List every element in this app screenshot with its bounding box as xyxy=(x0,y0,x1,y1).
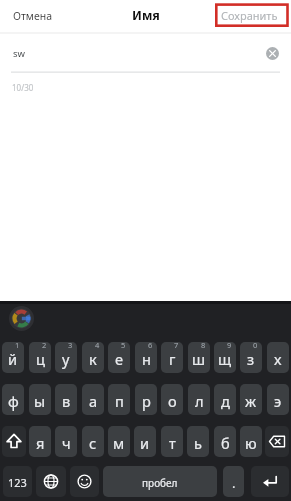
button[interactable]: б xyxy=(214,426,236,457)
button[interactable]: к xyxy=(82,342,104,373)
button[interactable]: я xyxy=(29,426,51,457)
staticText: ш xyxy=(192,349,206,369)
staticText: 123 xyxy=(8,475,27,490)
staticText: х xyxy=(274,349,282,369)
button[interactable]: Ввод xyxy=(251,466,289,497)
staticText: 7 xyxy=(174,342,179,350)
staticText: ь xyxy=(194,433,202,453)
staticText: л xyxy=(195,391,204,411)
staticText: 2 xyxy=(42,342,47,350)
staticText: г xyxy=(169,349,176,369)
staticText: ф xyxy=(8,391,19,411)
button[interactable]: Эмодзи xyxy=(70,466,99,497)
button[interactable]: р xyxy=(135,384,157,415)
staticText: ы xyxy=(34,391,46,411)
staticText: ж xyxy=(245,391,257,411)
staticText: 0 xyxy=(253,342,258,350)
staticText: й xyxy=(8,349,18,369)
staticText: о xyxy=(168,391,177,411)
staticText: т xyxy=(169,433,176,453)
button[interactable]: е xyxy=(108,342,130,373)
staticText: к xyxy=(89,349,97,369)
button[interactable]: Сменить язык xyxy=(36,466,66,497)
staticText: ц xyxy=(36,349,45,369)
button[interactable]: ю xyxy=(240,426,262,457)
button[interactable]: Очистить xyxy=(266,47,279,60)
staticText: 8 xyxy=(201,342,206,350)
staticText: э xyxy=(274,391,282,411)
staticText: Отмена xyxy=(13,9,53,23)
button[interactable]: и xyxy=(134,426,156,457)
staticText: Сохранить xyxy=(221,8,278,23)
staticText: Имя xyxy=(132,7,160,24)
button[interactable]: й xyxy=(2,342,24,373)
staticText: б xyxy=(221,433,230,453)
button[interactable]: н xyxy=(135,342,157,373)
button[interactable]: ц xyxy=(29,342,51,373)
staticText: з xyxy=(247,349,255,369)
staticText: в xyxy=(62,391,71,411)
button[interactable]: у xyxy=(55,342,77,373)
button[interactable]: Отмена xyxy=(13,9,53,23)
button[interactable]: ш xyxy=(188,342,210,373)
button[interactable]: з xyxy=(240,342,262,373)
button[interactable]: г xyxy=(161,342,183,373)
staticText: 9 xyxy=(227,342,232,350)
button[interactable]: Сохранить xyxy=(221,8,278,23)
staticText: е xyxy=(115,349,124,369)
staticText: 1 xyxy=(15,342,20,350)
staticText: я xyxy=(36,433,45,453)
staticText: . xyxy=(232,474,236,492)
button[interactable]: п xyxy=(108,384,130,415)
button[interactable]: с xyxy=(82,426,104,457)
button[interactable]: м xyxy=(108,426,130,457)
button[interactable]: Shift xyxy=(2,426,26,457)
button[interactable]: в xyxy=(55,384,77,415)
staticText: 5 xyxy=(121,342,126,350)
button[interactable]: Backspace xyxy=(265,426,289,457)
staticText: пробел xyxy=(142,476,178,490)
staticText: м xyxy=(113,433,125,453)
staticText: р xyxy=(142,391,151,411)
button[interactable]: ф xyxy=(2,384,24,415)
button[interactable]: ч xyxy=(55,426,77,457)
button[interactable]: ж xyxy=(240,384,262,415)
button[interactable]: д xyxy=(214,384,236,415)
staticText: щ xyxy=(218,349,232,369)
button[interactable]: ы xyxy=(29,384,51,415)
button[interactable]: о xyxy=(161,384,183,415)
button[interactable]: х xyxy=(267,342,289,373)
staticText: sw xyxy=(13,47,26,60)
staticText: ч xyxy=(62,433,71,453)
button[interactable]: 123 xyxy=(3,466,32,497)
button[interactable]: ь xyxy=(187,426,209,457)
button[interactable]: э xyxy=(267,384,289,415)
staticText: с xyxy=(89,433,97,453)
staticText: у xyxy=(62,349,70,369)
button[interactable]: щ xyxy=(214,342,236,373)
button[interactable]: т xyxy=(161,426,183,457)
staticText: п xyxy=(115,391,124,411)
staticText: д xyxy=(221,391,230,411)
staticText: и xyxy=(140,433,150,453)
button[interactable]: л xyxy=(188,384,210,415)
button[interactable]: а xyxy=(82,384,104,415)
button[interactable]: Google xyxy=(9,306,34,331)
button[interactable]: пробел xyxy=(103,466,217,497)
staticText: а xyxy=(89,391,98,411)
button[interactable]: . xyxy=(223,466,244,497)
staticText: 4 xyxy=(95,342,100,350)
staticText: н xyxy=(142,349,151,369)
staticText: 6 xyxy=(148,342,153,350)
staticText: ю xyxy=(245,433,257,453)
staticText: 3 xyxy=(68,342,73,350)
staticText: 10/30 xyxy=(12,82,34,93)
